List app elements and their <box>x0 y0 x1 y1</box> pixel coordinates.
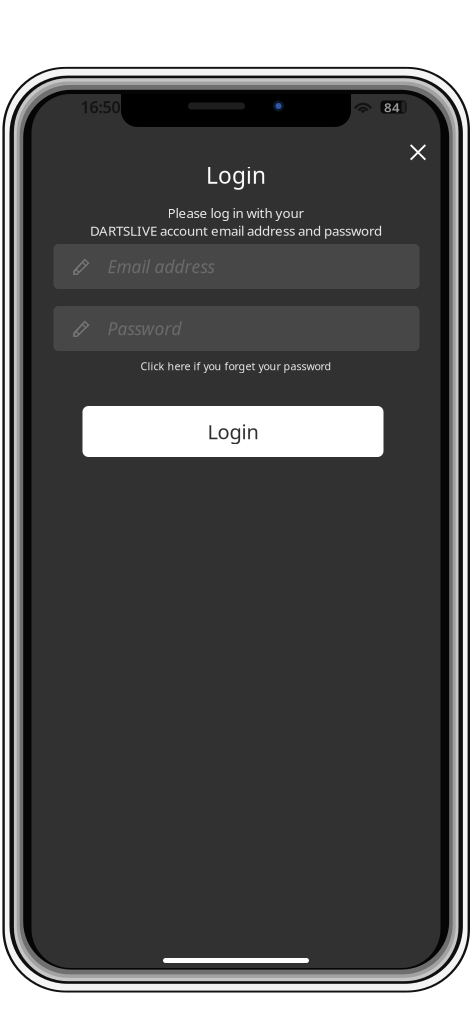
staticText: Password <box>107 317 181 340</box>
staticText: 16:50 <box>80 96 120 118</box>
staticText: Login <box>207 418 258 445</box>
button[interactable]: Password <box>53 306 419 351</box>
button[interactable]: Click here if you forget your password <box>31 356 440 376</box>
staticText: Login <box>206 160 266 190</box>
staticText: 84 <box>384 98 400 116</box>
button[interactable]: Login <box>82 406 383 457</box>
staticText: Please log in with your <box>167 204 304 222</box>
button[interactable]: Email address <box>53 244 419 289</box>
staticText: Email address <box>107 255 214 278</box>
button[interactable]: Close <box>399 133 437 171</box>
staticText: DARTSLIVE account email address and pass… <box>90 222 382 239</box>
staticText: Click here if you forget your password <box>140 359 331 373</box>
